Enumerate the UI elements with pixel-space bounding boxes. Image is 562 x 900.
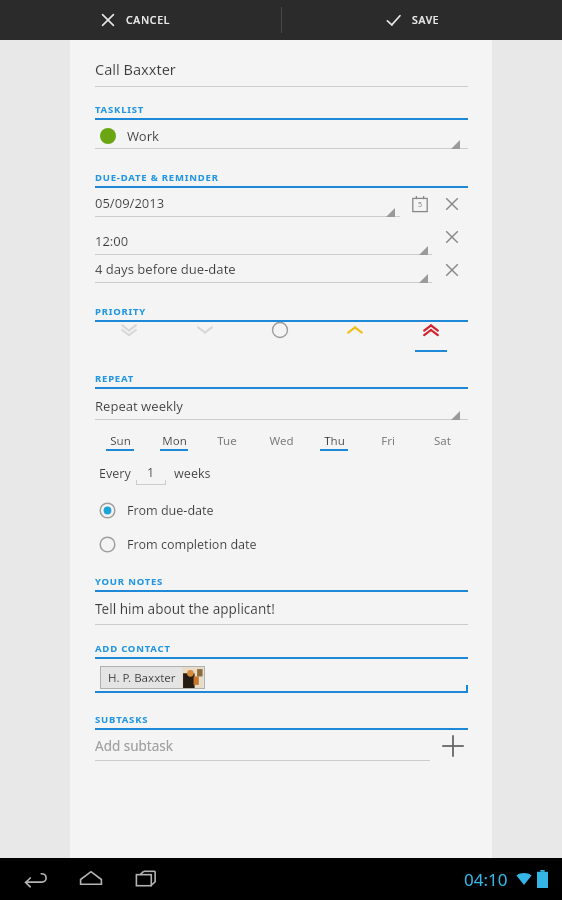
button[interactable]: Low priority — [188, 317, 222, 343]
button[interactable]: 05/09/2013 — [95, 190, 400, 216]
staticText: Thu — [324, 433, 345, 449]
button[interactable]: High priority — [338, 317, 372, 343]
button[interactable]: 12:00 — [95, 228, 432, 254]
button[interactable]: CANCEL — [100, 0, 210, 40]
other: Wi-Fi — [516, 871, 532, 887]
staticText: 4 days before due-date — [95, 260, 236, 278]
staticText: weeks — [174, 465, 211, 482]
button[interactable]: Tue — [203, 430, 251, 452]
staticText: REPEAT — [95, 372, 134, 385]
staticText: SUBTASKS — [95, 713, 149, 726]
staticText: PRIORITY — [95, 305, 147, 318]
button[interactable]: 4 days before due-date — [95, 256, 432, 282]
staticText: SAVE — [412, 13, 440, 27]
staticText: 04:10 — [464, 868, 508, 891]
button[interactable]: Wed — [257, 430, 305, 452]
button[interactable]: Add subtask — [438, 731, 468, 761]
staticText: Sat — [434, 433, 451, 449]
button[interactable]: Repeat weekly — [95, 392, 468, 419]
staticText: DUE-DATE & REMINDER — [95, 171, 219, 184]
staticText: 5 — [418, 200, 423, 210]
staticText: Tell him about the applicant! — [95, 600, 275, 618]
button[interactable]: Thu — [310, 430, 358, 452]
button[interactable]: Clear — [443, 195, 461, 213]
staticText: Tue — [217, 433, 237, 449]
button[interactable]: Call Baxxter — [95, 52, 468, 86]
button[interactable]: Work — [95, 122, 468, 150]
button[interactable]: From due-date — [99, 498, 349, 522]
staticText: YOUR NOTES — [95, 575, 164, 588]
staticText: 1 — [147, 464, 155, 481]
button[interactable]: Highest priority — [414, 317, 448, 343]
button[interactable]: Clear — [443, 228, 461, 246]
staticText: H. P. Baxxter — [108, 670, 176, 686]
button[interactable]: Fri — [364, 430, 412, 452]
button[interactable]: Add subtask — [95, 732, 430, 760]
staticText: Add subtask — [95, 737, 173, 755]
staticText: TASKLIST — [95, 103, 145, 116]
staticText: Call Baxxter — [95, 59, 176, 79]
staticText: From completion date — [127, 536, 257, 553]
button[interactable]: Sat — [418, 430, 466, 452]
staticText: From due-date — [127, 502, 214, 519]
button[interactable]: Clear — [443, 261, 461, 279]
button[interactable]: From completion date — [99, 532, 349, 556]
button[interactable]: Pick date — [410, 194, 430, 214]
button[interactable]: 1 — [136, 460, 166, 484]
button[interactable]: Lowest priority — [112, 317, 146, 343]
button[interactable]: SAVE — [385, 0, 485, 40]
staticText: Sun — [110, 433, 131, 449]
button[interactable]: Back — [10, 858, 62, 900]
staticText: 12:00 — [95, 232, 129, 250]
staticText: ADD CONTACT — [95, 642, 171, 655]
button[interactable]: H. P. Baxxter — [100, 666, 205, 689]
staticText: Wed — [269, 433, 294, 449]
button[interactable]: Tell him about the applicant! — [95, 594, 468, 624]
staticText: 05/09/2013 — [95, 194, 165, 212]
staticText: Every — [99, 465, 131, 482]
staticText: CANCEL — [126, 13, 171, 27]
button[interactable]: Recent apps — [120, 858, 172, 900]
other: Battery — [537, 870, 548, 888]
button[interactable]: Normal priority — [263, 317, 297, 343]
button[interactable]: Mon — [150, 430, 198, 452]
staticText: Work — [127, 127, 160, 145]
button[interactable]: Home — [65, 858, 117, 900]
staticText: Fri — [381, 433, 395, 449]
staticText: Repeat weekly — [95, 397, 183, 415]
staticText: Mon — [162, 433, 187, 449]
button[interactable]: Sun — [96, 430, 144, 452]
